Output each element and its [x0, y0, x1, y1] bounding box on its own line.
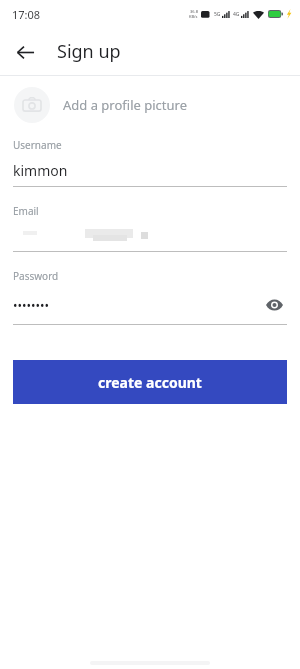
- staticText: Email: [13, 204, 39, 218]
- staticText: Password: [13, 269, 59, 283]
- button[interactable]: Password: [13, 269, 287, 342]
- button[interactable]: Show password: [261, 292, 287, 318]
- button[interactable]: Email: [13, 204, 287, 269]
- button[interactable]: Username: [13, 138, 287, 204]
- staticText: 4G: [233, 11, 240, 18]
- button[interactable]: create account: [13, 360, 287, 404]
- staticText: Sign up: [57, 39, 121, 64]
- button[interactable]: Back: [8, 35, 42, 69]
- staticText: 17:08: [12, 7, 41, 22]
- staticText: ••••••••: [13, 297, 50, 313]
- staticText: KB/s: [189, 14, 198, 19]
- staticText: create account: [98, 373, 202, 392]
- staticText: 36.8: [190, 9, 198, 14]
- staticText: Add a profile picture: [63, 96, 187, 114]
- button[interactable]: Add a profile picture: [0, 76, 300, 133]
- staticText: kimmon: [13, 161, 68, 180]
- staticText: Username: [13, 138, 62, 152]
- staticText: 5G: [214, 11, 221, 18]
